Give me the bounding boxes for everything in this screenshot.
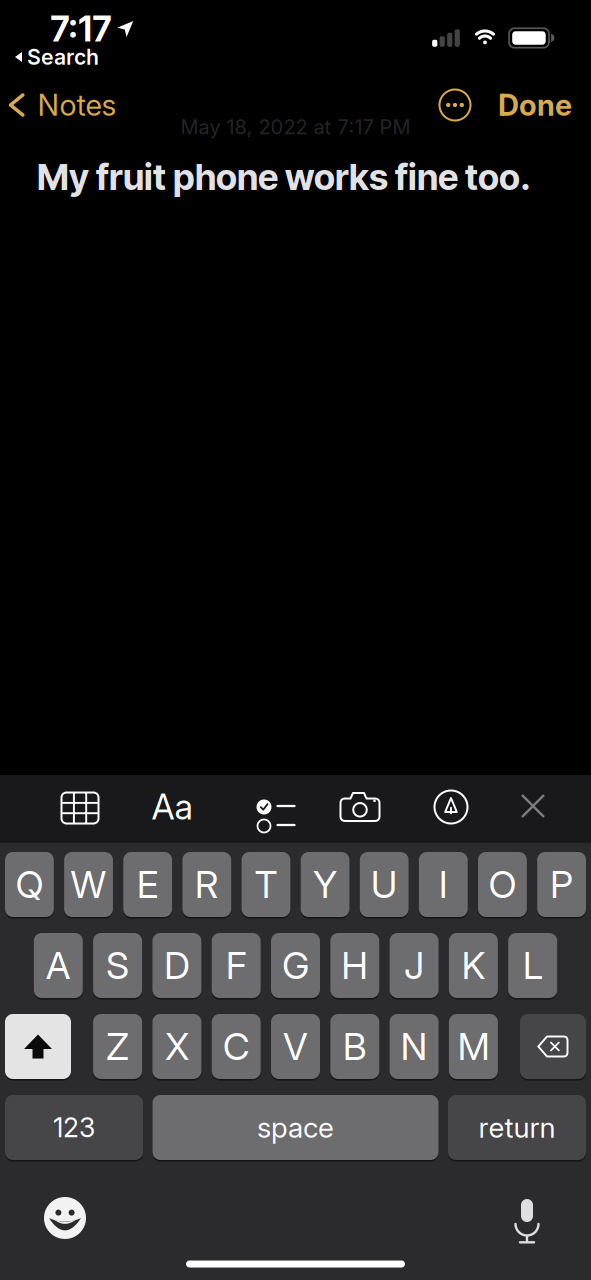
button[interactable]: Format bbox=[142, 777, 202, 837]
button[interactable]: Notes bbox=[7, 88, 116, 122]
button[interactable]: C bbox=[212, 1014, 261, 1079]
staticText: D bbox=[164, 943, 190, 987]
button[interactable]: space bbox=[152, 1095, 438, 1160]
staticText: Done bbox=[498, 88, 572, 122]
staticText: N bbox=[401, 1024, 428, 1068]
button[interactable]: E bbox=[123, 852, 172, 917]
button[interactable]: return bbox=[448, 1095, 586, 1160]
staticText: Z bbox=[106, 1024, 129, 1068]
staticText: My fruit phone works fine too. bbox=[37, 155, 531, 199]
staticText: T bbox=[254, 862, 277, 906]
button[interactable]: More bbox=[439, 89, 470, 120]
button[interactable]: M bbox=[449, 1014, 498, 1079]
button[interactable]: Done bbox=[498, 88, 572, 122]
button[interactable]: Markup bbox=[421, 777, 481, 837]
staticText: Notes bbox=[37, 88, 116, 122]
staticText: Y bbox=[313, 862, 337, 906]
staticText: space bbox=[257, 1111, 334, 1144]
button[interactable]: R bbox=[182, 852, 231, 917]
button[interactable]: Insert table bbox=[50, 778, 110, 838]
button[interactable]: W bbox=[64, 852, 113, 917]
staticText: W bbox=[70, 862, 106, 906]
staticText: return bbox=[478, 1111, 555, 1144]
button[interactable]: Emoji bbox=[37, 1190, 93, 1246]
button[interactable]: Z bbox=[93, 1014, 142, 1079]
button[interactable]: L bbox=[508, 933, 557, 998]
button[interactable]: X bbox=[152, 1014, 201, 1079]
button[interactable]: F bbox=[212, 933, 261, 998]
button[interactable]: V bbox=[271, 1014, 320, 1079]
staticText: Search bbox=[27, 44, 99, 70]
button[interactable]: I bbox=[419, 852, 468, 917]
staticText: V bbox=[283, 1024, 308, 1068]
staticText: F bbox=[226, 943, 247, 987]
staticText: A bbox=[46, 943, 71, 987]
staticText: X bbox=[165, 1024, 189, 1068]
button[interactable]: Checklist bbox=[235, 777, 295, 837]
staticText: Q bbox=[15, 862, 43, 906]
button[interactable]: K bbox=[449, 933, 498, 998]
staticText: O bbox=[488, 862, 516, 906]
button[interactable]: Q bbox=[5, 852, 54, 917]
button[interactable]: S bbox=[93, 933, 142, 998]
button[interactable]: Insert photo bbox=[330, 777, 390, 837]
staticText: I bbox=[439, 862, 448, 906]
button[interactable]: P bbox=[537, 852, 586, 917]
button[interactable]: Dictate bbox=[505, 1189, 549, 1245]
staticText: 123 bbox=[53, 1112, 95, 1143]
staticText: May 18, 2022 at 7:17 PM bbox=[180, 115, 410, 139]
button[interactable]: 123 bbox=[5, 1095, 143, 1160]
button[interactable]: Y bbox=[301, 852, 349, 917]
staticText: H bbox=[341, 943, 368, 987]
staticText: K bbox=[461, 943, 485, 987]
staticText: S bbox=[106, 943, 129, 987]
staticText: R bbox=[195, 862, 219, 906]
staticText: C bbox=[223, 1024, 250, 1068]
staticText: 7:17 bbox=[50, 9, 111, 49]
button[interactable]: T bbox=[241, 852, 290, 917]
staticText: G bbox=[282, 943, 309, 987]
button[interactable]: J bbox=[390, 933, 439, 998]
button[interactable]: B bbox=[330, 1014, 379, 1079]
button[interactable]: D bbox=[152, 933, 201, 998]
button[interactable]: N bbox=[390, 1014, 439, 1079]
button[interactable]: Shift bbox=[5, 1014, 71, 1079]
button[interactable]: Search bbox=[15, 44, 99, 70]
staticText: B bbox=[343, 1024, 367, 1068]
button[interactable]: O bbox=[478, 852, 527, 917]
staticText: L bbox=[523, 943, 543, 987]
button[interactable]: U bbox=[360, 852, 409, 917]
staticText: U bbox=[371, 862, 398, 906]
staticText: P bbox=[550, 862, 573, 906]
button[interactable]: H bbox=[330, 933, 379, 998]
staticText: J bbox=[404, 943, 424, 987]
button[interactable]: Dismiss keyboard bar bbox=[503, 776, 563, 836]
button[interactable]: G bbox=[271, 933, 320, 998]
staticText: E bbox=[137, 862, 159, 906]
button[interactable]: Delete bbox=[520, 1014, 586, 1079]
button[interactable]: A bbox=[34, 933, 83, 998]
staticText: M bbox=[457, 1024, 489, 1068]
staticText: Aa bbox=[151, 787, 192, 827]
